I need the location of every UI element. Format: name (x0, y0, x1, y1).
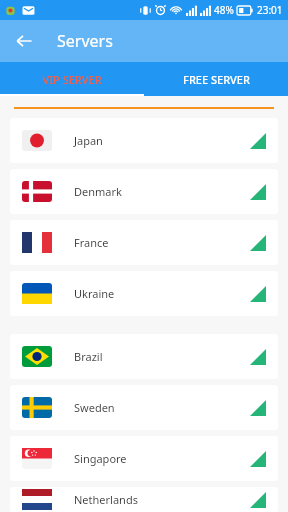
staticText: France (74, 235, 109, 250)
staticText: Servers (57, 30, 113, 52)
button[interactable]: France (10, 220, 278, 265)
staticText: Singapore (74, 451, 127, 466)
button[interactable]: VIP SERVER (0, 62, 144, 96)
button[interactable]: Denmark (10, 169, 278, 214)
button[interactable]: Sweden (10, 385, 278, 430)
staticText: 23:01 (257, 3, 283, 17)
button[interactable]: Brazil (10, 334, 278, 379)
staticText: Ukraine (74, 286, 115, 301)
staticText: VIP SERVER (42, 72, 102, 87)
staticText: Japan (74, 133, 103, 148)
staticText: Brazil (74, 349, 103, 364)
staticText: Netherlands (74, 492, 138, 507)
button[interactable]: Ukraine (10, 271, 278, 316)
staticText: Denmark (74, 184, 122, 199)
staticText: 48% (214, 3, 234, 17)
button[interactable]: Netherlands (10, 487, 278, 512)
staticText: Sweden (74, 400, 115, 415)
button[interactable]: Japan (10, 118, 278, 163)
button[interactable]: FREE SERVER (144, 62, 288, 96)
button[interactable]: Back (8, 25, 40, 57)
button[interactable]: Singapore (10, 436, 278, 481)
staticText: FREE SERVER (183, 72, 250, 87)
